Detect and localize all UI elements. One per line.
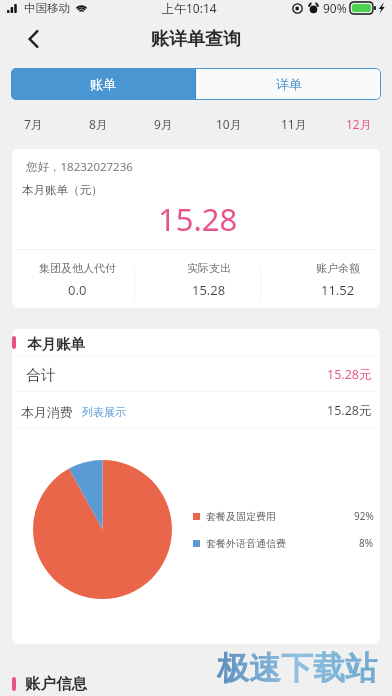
staticText: 15.28元: [327, 402, 372, 419]
button[interactable]: 10月: [196, 100, 261, 149]
staticText: 9月: [154, 116, 173, 132]
staticText: 中国移动: [24, 1, 70, 15]
staticText: 11.52: [321, 281, 355, 299]
button[interactable]: 12月: [326, 100, 391, 149]
button[interactable]: 8月: [66, 100, 131, 149]
staticText: 10月: [216, 116, 242, 132]
staticText: 实际支出: [187, 261, 231, 275]
button[interactable]: 9月: [131, 100, 196, 149]
staticText: 11月: [281, 116, 307, 132]
staticText: 90%: [323, 0, 347, 16]
button[interactable]: 11月: [261, 100, 326, 149]
button[interactable]: 账单: [11, 68, 195, 100]
staticText: 7月: [24, 116, 43, 132]
staticText: 本月账单: [27, 335, 85, 353]
staticText: 本月消费: [21, 404, 73, 420]
staticText: 合计: [26, 366, 56, 385]
button[interactable]: 列表展示: [82, 403, 126, 417]
staticText: 15.28元: [327, 366, 372, 383]
staticText: 您好，18232027236: [26, 159, 133, 175]
button[interactable]: 7月: [1, 100, 66, 149]
staticText: 套餐外语音通信费: [206, 537, 286, 550]
staticText: 8%: [359, 536, 374, 550]
staticText: 极速下载站: [217, 648, 377, 688]
staticText: 详单: [276, 76, 302, 92]
staticText: 账户信息: [25, 674, 87, 694]
staticText: 15.28: [192, 281, 226, 299]
staticText: 本月账单（元）: [22, 183, 103, 197]
staticText: 套餐及固定费用: [206, 510, 276, 523]
staticText: 列表展示: [82, 405, 126, 419]
staticText: 账详单查询: [151, 28, 241, 51]
staticText: 上午10:14: [162, 0, 217, 16]
staticText: 8月: [89, 116, 108, 132]
staticText: 0.0: [68, 281, 87, 299]
staticText: 92%: [354, 509, 374, 523]
staticText: 15.28: [158, 198, 238, 240]
button[interactable]: Back: [11, 22, 55, 56]
staticText: 12月: [346, 116, 372, 132]
button[interactable]: 详单: [196, 68, 381, 100]
staticText: 账单: [90, 76, 116, 92]
staticText: 账户余额: [316, 261, 360, 275]
staticText: 集团及他人代付: [39, 261, 116, 275]
